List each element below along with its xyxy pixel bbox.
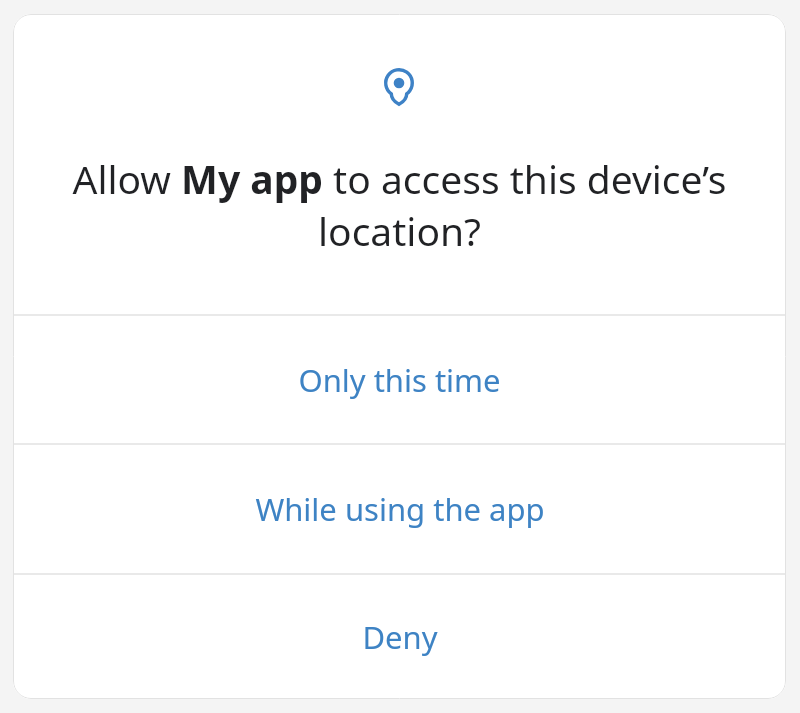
other: Location xyxy=(384,68,414,106)
staticText: While using the app xyxy=(255,488,545,530)
staticText: Allow My app to access this device’s loc… xyxy=(53,152,746,257)
button[interactable]: Deny xyxy=(13,575,786,699)
button[interactable]: While using the app xyxy=(13,445,786,573)
staticText: Deny xyxy=(362,616,438,658)
staticText: Only this time xyxy=(298,359,501,401)
button[interactable]: Only this time xyxy=(13,316,786,443)
